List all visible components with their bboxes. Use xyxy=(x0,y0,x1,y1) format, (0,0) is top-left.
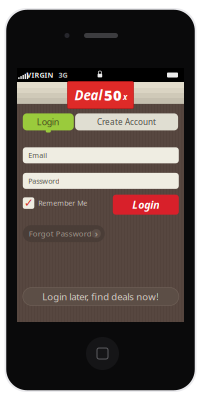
staticText: Login later, find deals now! xyxy=(42,290,159,303)
staticText: x xyxy=(123,92,127,102)
staticText: Forgot Password? xyxy=(29,228,95,239)
staticText: ✓ xyxy=(24,196,33,209)
staticText: Create Account xyxy=(97,116,156,127)
staticText: Password xyxy=(28,176,59,186)
staticText: 3G xyxy=(58,70,67,80)
staticText: Email xyxy=(28,150,47,160)
button[interactable]: Login xyxy=(23,113,74,130)
staticText: Login xyxy=(132,197,159,212)
button[interactable]: Login xyxy=(113,195,179,215)
staticText: Login xyxy=(37,116,60,128)
button[interactable]: Create Account xyxy=(75,113,178,130)
button[interactable]: Forgot Password? xyxy=(23,225,105,242)
staticText: 50 xyxy=(104,85,122,105)
staticText: VIRGIN xyxy=(26,70,53,80)
staticText: Deal xyxy=(74,86,102,104)
staticText: › xyxy=(95,228,98,239)
button[interactable]: ✓ xyxy=(23,196,87,210)
button[interactable]: Login later, find deals now! xyxy=(23,287,179,305)
staticText: Remember Me xyxy=(38,198,87,208)
